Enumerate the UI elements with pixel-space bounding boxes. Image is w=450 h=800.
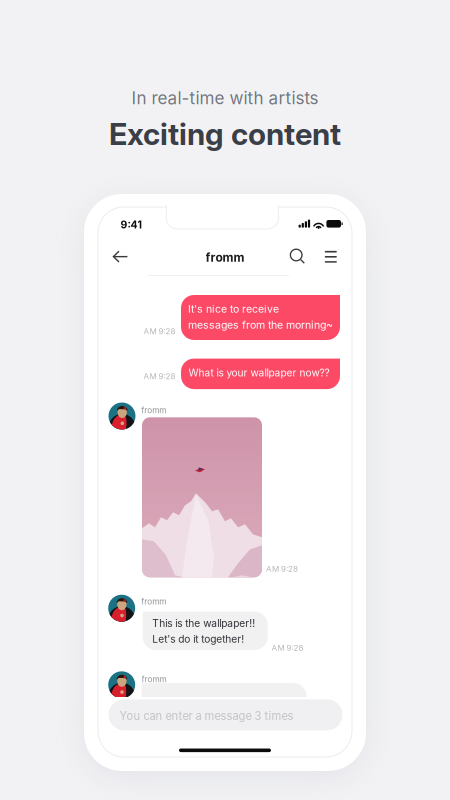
staticText: AM 9:28 [143, 371, 175, 381]
staticText: fromm [141, 405, 166, 415]
staticText: fromm [205, 250, 244, 265]
button[interactable]: Menu [315, 235, 341, 261]
staticText: AM 9:28 [271, 643, 303, 653]
staticText: fromm [141, 674, 166, 684]
staticText: Exciting content [109, 116, 341, 152]
staticText: You can enter a message 3 times [119, 709, 293, 723]
button[interactable]: You can enter a message 3 times [108, 699, 342, 730]
staticText: It's nice to receive messages from the m… [188, 302, 333, 331]
staticText: AM 9:28 [266, 564, 298, 574]
staticText: In real-time with artists [131, 88, 318, 108]
staticText: What is your wallpaper now?? [188, 367, 329, 379]
button[interactable]: Back [107, 244, 133, 270]
staticText: fromm [141, 596, 166, 606]
button[interactable]: fromm [195, 246, 255, 268]
staticText: 9:41 [121, 218, 142, 231]
button[interactable]: Search [285, 244, 311, 270]
staticText: AM 9:28 [143, 326, 175, 336]
staticText: This is the wallpaper!! Let's do it toge… [152, 617, 255, 645]
